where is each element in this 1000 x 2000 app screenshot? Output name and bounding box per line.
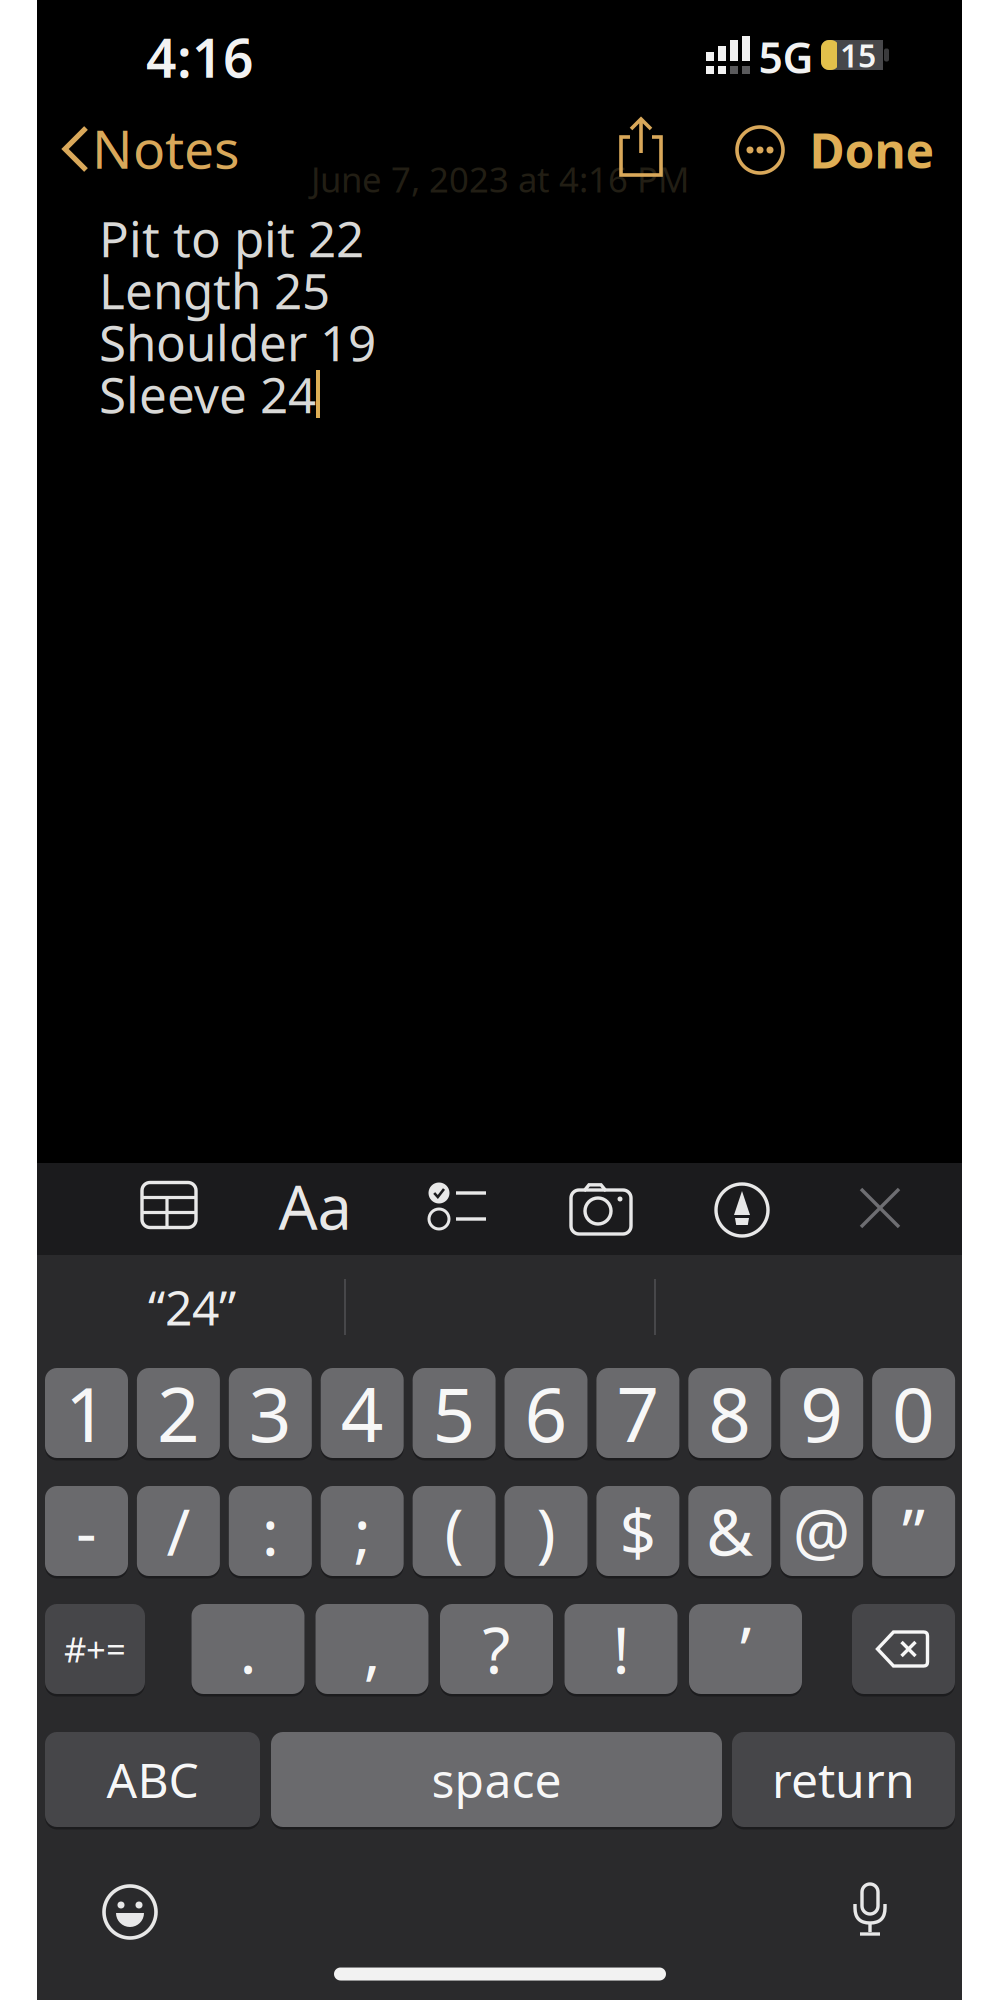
staticText: & [706,1488,753,1573]
button[interactable]: Formatting [260,1176,370,1236]
staticText: 5 [433,1363,476,1463]
button[interactable]: Done [797,125,947,175]
staticText: 1 [65,1363,108,1463]
button[interactable]: “24” [52,1263,332,1351]
staticText: Pit to pit 22 [99,205,364,271]
button[interactable]: More [736,126,784,174]
staticText: 8 [708,1363,751,1463]
button[interactable]: - [45,1486,128,1576]
button[interactable]: 2 [137,1368,220,1458]
button[interactable]: $ [596,1486,679,1576]
staticText: $ [619,1488,656,1573]
button[interactable]: ( [413,1486,496,1576]
button[interactable]: Share [617,117,665,179]
button[interactable]: return [732,1732,955,1827]
button[interactable]: ABC [45,1732,260,1827]
staticText: ) [536,1488,555,1573]
staticText: 4 [341,1363,384,1463]
button[interactable]: 9 [780,1368,863,1458]
button[interactable]: ’ [689,1604,802,1694]
button[interactable]: 8 [688,1368,771,1458]
staticText: ( [445,1488,464,1573]
staticText: : [262,1488,279,1573]
staticText: 7 [616,1363,659,1463]
staticText: Sleeve 24 [99,361,316,427]
button[interactable]: ” [872,1486,955,1576]
staticText: ’ [740,1606,751,1691]
button[interactable]: Insert photo [571,1183,633,1237]
button[interactable]: . [191,1604,304,1694]
staticText: ? [482,1606,510,1691]
staticText: Shoulder 19 [99,309,376,375]
staticText: @ [793,1488,851,1573]
button[interactable]: ) [504,1486,587,1576]
staticText: 15 [840,34,876,76]
button[interactable]: 3 [229,1368,312,1458]
staticText: Length 25 [99,257,330,323]
staticText: Done [809,118,934,182]
staticText: 5G [758,29,813,85]
button[interactable]: @ [780,1486,863,1576]
button[interactable]: 1 [45,1368,128,1458]
staticText: 2 [157,1363,200,1463]
button[interactable]: Dictation [848,1882,892,1940]
button[interactable]: ? [440,1604,553,1694]
button[interactable]: Emoji [102,1884,158,1940]
staticText: . [239,1606,256,1691]
button[interactable]: / [137,1486,220,1576]
button[interactable]: ! [564,1604,677,1694]
button[interactable]: Insert table [142,1182,198,1230]
button[interactable]: 4 [321,1368,404,1458]
button[interactable]: : [229,1486,312,1576]
staticText: June 7, 2023 at 4:16 PM [311,156,689,202]
staticText: return [772,1748,915,1811]
button[interactable]: Dismiss keyboard [859,1187,901,1229]
staticText: space [431,1748,561,1811]
staticText: ABC [106,1748,198,1811]
button[interactable]: Delete [852,1604,955,1694]
staticText: , [363,1606,380,1691]
button[interactable]: 5 [413,1368,496,1458]
staticText: - [76,1488,97,1573]
staticText: ! [612,1606,629,1691]
button[interactable]: , [315,1604,428,1694]
button[interactable]: 6 [504,1368,587,1458]
staticText: Aa [278,1165,351,1247]
button[interactable]: space [271,1732,722,1827]
staticText: ; [354,1488,371,1573]
staticText: “24” [148,1275,236,1339]
staticText: 9 [800,1363,843,1463]
button[interactable]: Checklist [428,1182,488,1230]
button[interactable]: #+= [45,1604,145,1694]
button[interactable]: Notes [31,122,221,178]
staticText: 3 [249,1363,292,1463]
button[interactable]: 7 [596,1368,679,1458]
staticText: 4:16 [146,22,254,92]
button[interactable]: & [688,1486,771,1576]
button[interactable]: ; [321,1486,404,1576]
staticText: #+= [64,1626,126,1672]
staticText: 0 [892,1363,935,1463]
staticText: ” [902,1488,925,1573]
button[interactable]: Markup [715,1183,769,1237]
staticText: 6 [524,1363,567,1463]
staticText: / [166,1488,190,1573]
button[interactable]: 0 [872,1368,955,1458]
staticText: Notes [92,113,240,183]
